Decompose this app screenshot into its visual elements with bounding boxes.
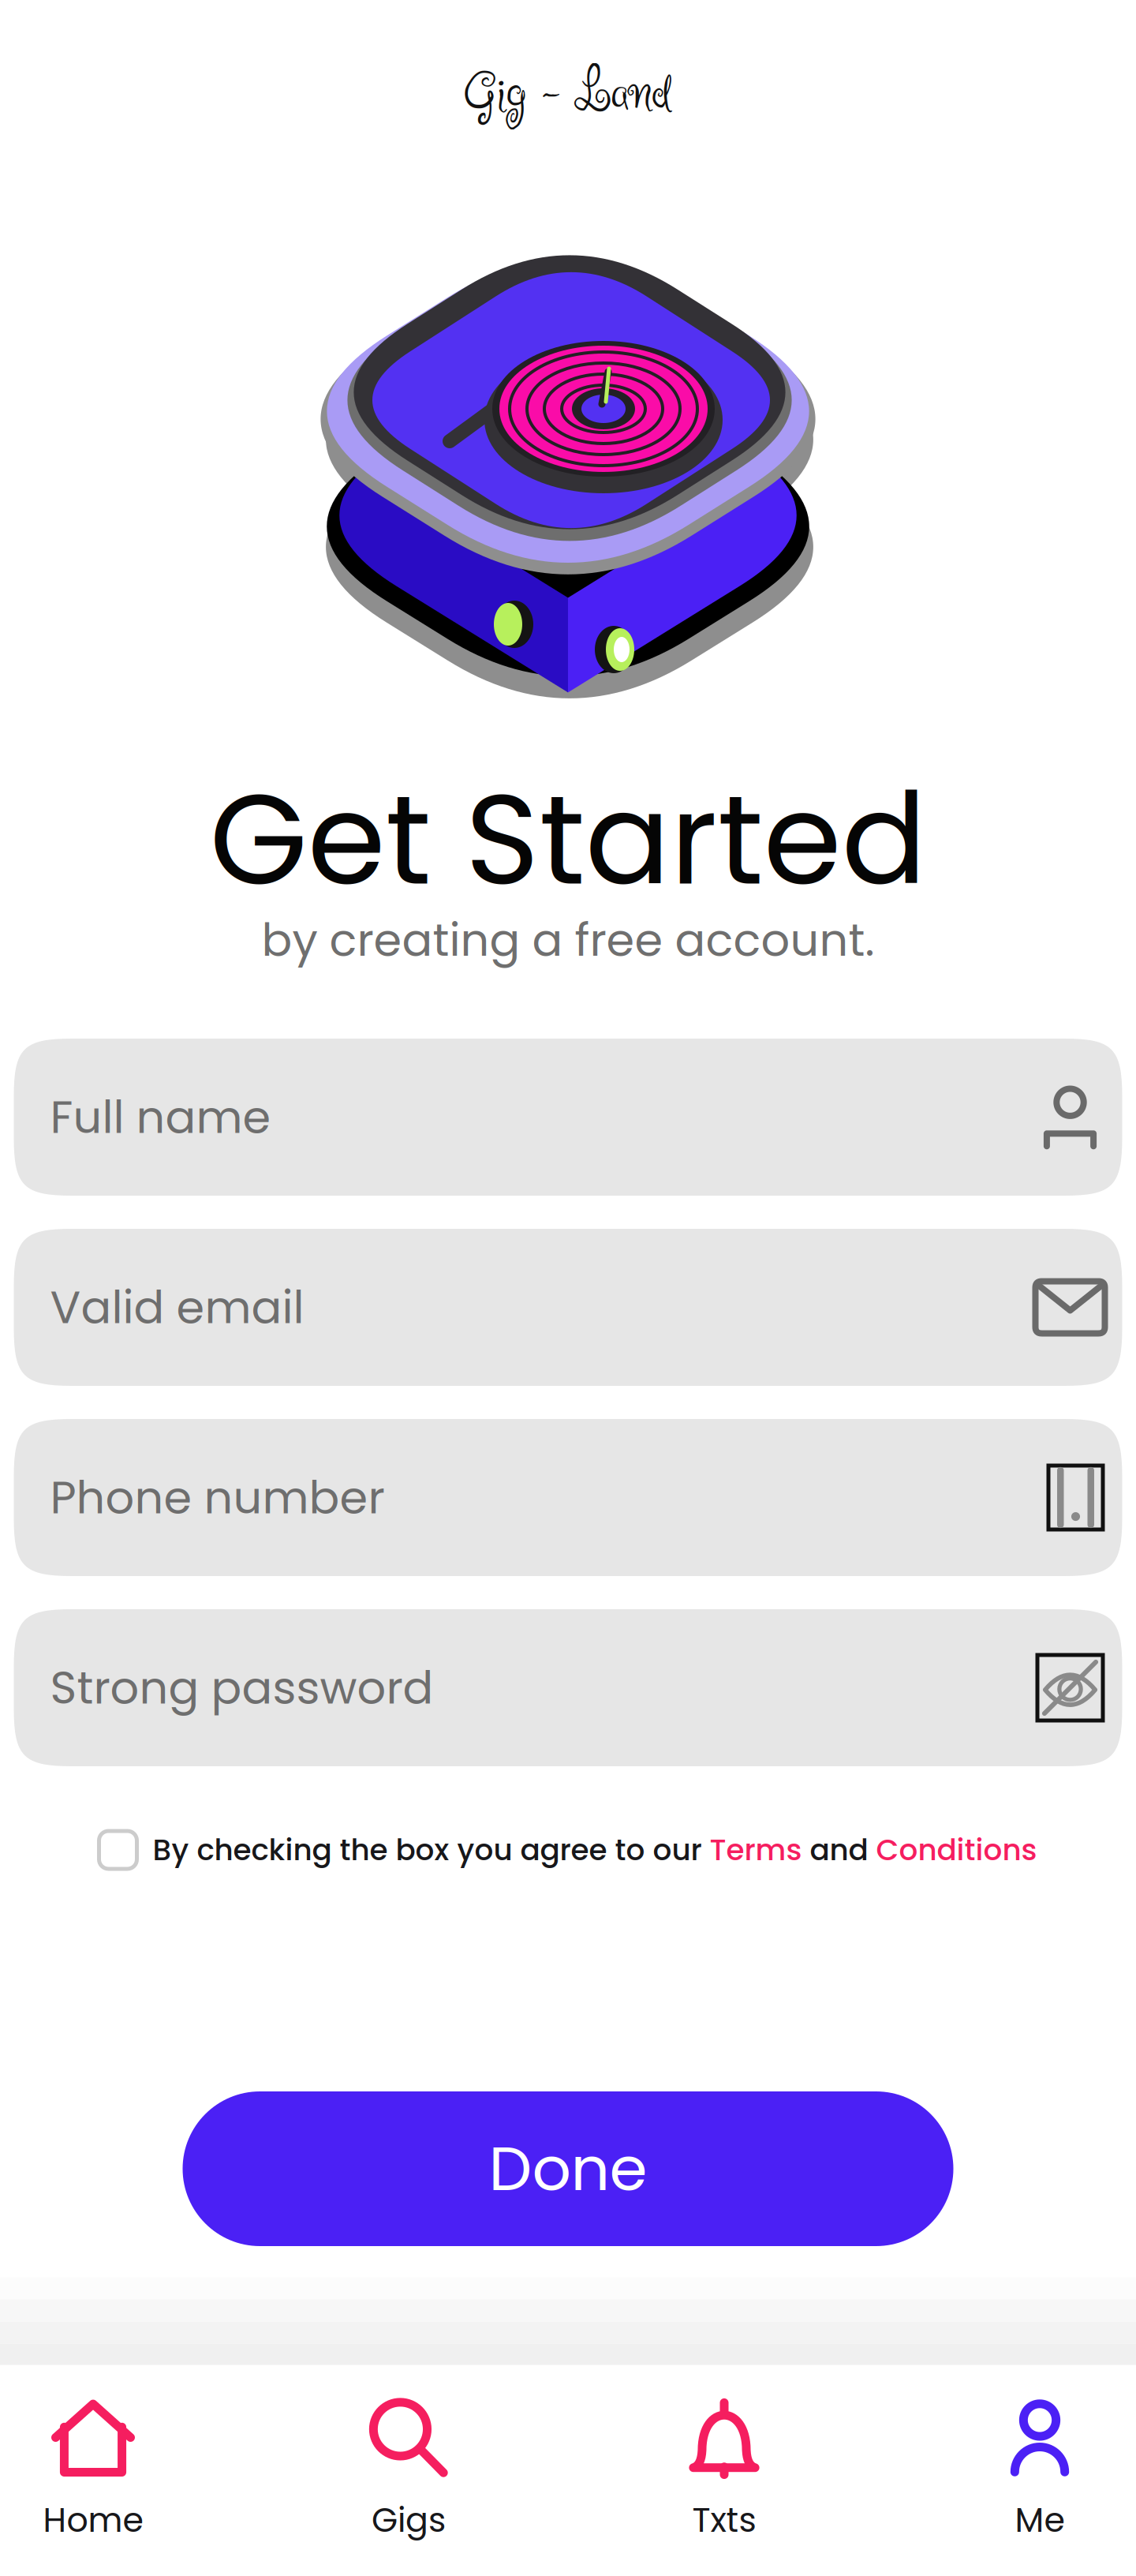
button[interactable]: Phone number: [14, 1419, 1122, 1576]
staticText: Done: [489, 2126, 647, 2212]
staticText: Full name: [50, 1085, 271, 1149]
button[interactable]: Me: [947, 2378, 1133, 2576]
staticText: Get Started: [209, 751, 927, 928]
button[interactable]: Done: [183, 2091, 953, 2246]
staticText: Phone number: [50, 1466, 385, 1529]
staticText: Valid email: [50, 1276, 304, 1339]
staticText: and: [802, 1829, 876, 1871]
button[interactable]: Valid email: [14, 1229, 1122, 1386]
staticText: Home: [43, 2496, 143, 2543]
button[interactable]: Txts: [631, 2378, 817, 2576]
staticText: Gigs: [372, 2496, 446, 2543]
staticText: By checking the box you agree to our: [153, 1829, 710, 1871]
button[interactable]: Home: [0, 2378, 186, 2576]
staticText: Strong password: [50, 1656, 433, 1719]
button[interactable]: Full name: [14, 1039, 1122, 1196]
staticText: by creating a free account.: [262, 908, 874, 972]
staticText: Conditions: [876, 1829, 1037, 1871]
staticText: Txts: [692, 2496, 756, 2543]
staticText: Terms: [710, 1829, 802, 1871]
staticText: Me: [1015, 2496, 1065, 2543]
button[interactable]: Gigs: [316, 2378, 502, 2576]
button[interactable]: Strong password: [14, 1609, 1122, 1766]
button[interactable]: By checking the box you agree to our: [0, 1824, 1136, 1876]
staticText: Gig - Land: [464, 57, 672, 130]
